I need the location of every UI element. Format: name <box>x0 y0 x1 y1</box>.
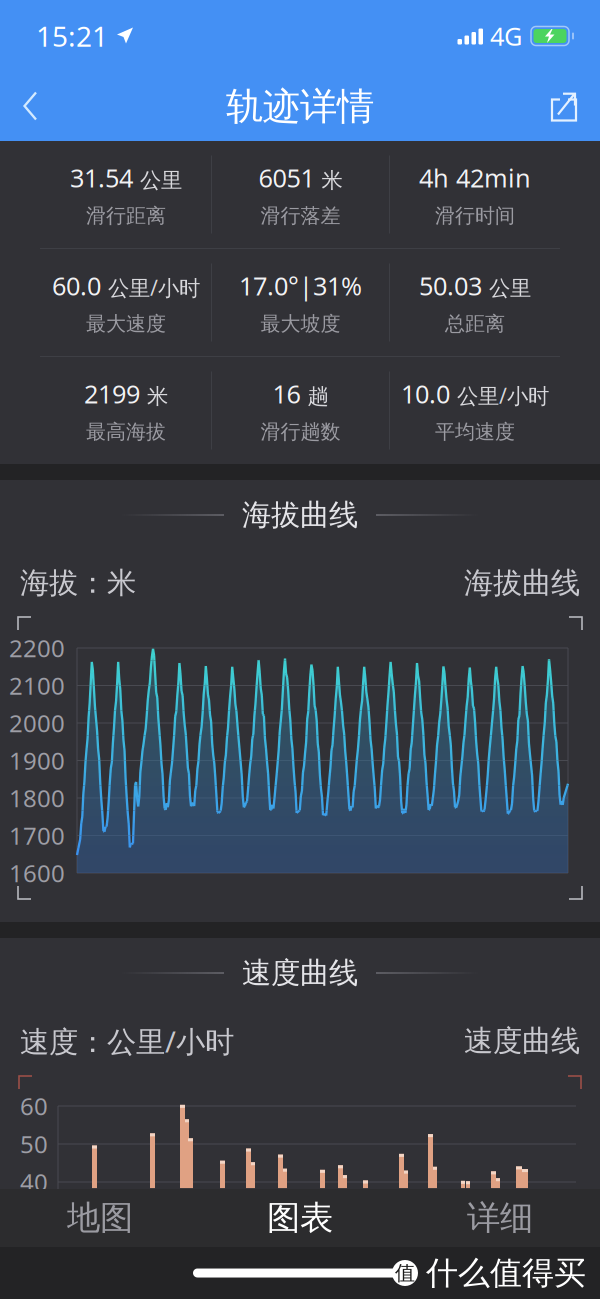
staticText: 60 <box>20 1090 48 1122</box>
button[interactable]: 详细 <box>400 1189 600 1247</box>
button[interactable]: 分享 <box>528 73 600 139</box>
staticText: 海拔曲线 <box>464 565 580 601</box>
staticText: 31.54 <box>70 161 133 194</box>
staticText: 2199 <box>84 377 140 410</box>
staticText: 速度曲线 <box>242 955 358 991</box>
staticText: 2000 <box>9 707 65 739</box>
staticText: 平均速度 <box>435 419 515 444</box>
staticText: 详细 <box>467 1197 533 1238</box>
staticText: 4h 42min <box>419 161 531 194</box>
staticText: 趟 <box>307 383 328 409</box>
staticText: 速度曲线 <box>464 1023 580 1059</box>
staticText: 最大坡度 <box>260 311 340 336</box>
staticText: 滑行时间 <box>435 203 515 228</box>
staticText: 1800 <box>9 782 65 814</box>
staticText: 40 <box>20 1166 48 1198</box>
staticText: 图表 <box>267 1197 333 1238</box>
staticText: 1900 <box>9 745 65 776</box>
staticText: 60.0 <box>52 269 101 302</box>
staticText: 50.03 <box>419 269 482 302</box>
button[interactable]: 返回 <box>0 73 62 139</box>
staticText: 最大速度 <box>86 311 166 336</box>
staticText: 公里/小时 <box>108 273 200 302</box>
staticText: 2100 <box>9 670 65 701</box>
staticText: 公里/小时 <box>457 381 549 410</box>
staticText: 总距离 <box>445 311 505 336</box>
staticText: 50 <box>20 1128 48 1160</box>
staticText: 1700 <box>9 820 65 851</box>
staticText: 滑行距离 <box>86 203 166 228</box>
staticText: 4G <box>490 19 522 53</box>
staticText: 值 <box>395 1261 415 1285</box>
staticText: 米 <box>147 383 168 409</box>
staticText: 米 <box>321 167 342 193</box>
staticText: 最高海拔 <box>86 419 166 444</box>
staticText: 公里 <box>140 167 182 193</box>
staticText: 速度：公里/小时 <box>20 1021 234 1060</box>
staticText: 海拔：米 <box>20 565 136 601</box>
button[interactable]: 地图 <box>0 1189 200 1247</box>
staticText: 17.0°|31% <box>239 269 362 302</box>
staticText: 什么值得买 <box>426 1253 586 1293</box>
staticText: 16 <box>272 377 300 410</box>
staticText: 2200 <box>9 632 65 664</box>
staticText: 15:21 <box>36 17 108 55</box>
staticText: 滑行落差 <box>260 203 340 228</box>
staticText: 滑行趟数 <box>260 419 340 444</box>
staticText: 地图 <box>67 1197 133 1238</box>
staticText: 海拔曲线 <box>242 497 358 533</box>
button[interactable]: 图表 <box>200 1189 400 1247</box>
staticText: 轨迹详情 <box>226 84 374 129</box>
staticText: 1600 <box>9 857 65 889</box>
staticText: 6051 <box>258 161 314 194</box>
staticText: 公里 <box>489 275 531 301</box>
staticText: 10.0 <box>401 377 450 410</box>
